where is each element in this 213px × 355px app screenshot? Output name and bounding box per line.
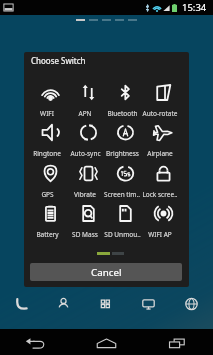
button[interactable]: Contacts bbox=[42, 288, 84, 320]
staticText: Brightness bbox=[106, 149, 139, 158]
button[interactable]: Browser bbox=[170, 288, 213, 320]
button[interactable]: Vibrate bbox=[69, 159, 107, 199]
button[interactable]: Phone bbox=[0, 288, 42, 320]
button[interactable]: Brightness bbox=[106, 118, 144, 158]
button[interactable]: Ringtone bbox=[31, 118, 69, 158]
staticText: Airplane bbox=[147, 149, 173, 158]
button[interactable]: SD Mass bbox=[69, 199, 107, 239]
button[interactable]: Cancel bbox=[30, 263, 182, 281]
button[interactable]: WIFI AP bbox=[144, 199, 182, 239]
button[interactable]: Recents bbox=[142, 329, 213, 355]
button[interactable]: WIFI bbox=[31, 78, 69, 118]
staticText: Bluetooth bbox=[107, 109, 138, 118]
staticText: Lock scree.. bbox=[142, 190, 178, 199]
button[interactable]: Auto-sync bbox=[69, 118, 107, 158]
button[interactable]: GPS bbox=[31, 159, 69, 199]
button[interactable]: Airplane bbox=[144, 118, 182, 158]
button[interactable]: Apps bbox=[84, 288, 127, 320]
staticText: Auto-rotate bbox=[142, 109, 178, 118]
staticText: Vibrate bbox=[74, 190, 96, 199]
staticText: 15:34 bbox=[182, 1, 207, 14]
staticText: WIFI bbox=[40, 109, 54, 118]
button[interactable]: APN bbox=[69, 78, 107, 118]
button[interactable]: Screen tim.. bbox=[106, 159, 144, 199]
button[interactable]: Messaging bbox=[127, 288, 170, 320]
button[interactable]: SD Unmou.. bbox=[106, 199, 144, 239]
button[interactable]: Lock scree.. bbox=[144, 159, 182, 199]
button[interactable]: Bluetooth bbox=[106, 78, 144, 118]
staticText: Choose Switch bbox=[31, 55, 86, 66]
staticText: Cancel bbox=[91, 266, 122, 279]
button[interactable]: Home bbox=[71, 329, 142, 355]
staticText: Auto-sync bbox=[70, 149, 101, 158]
staticText: Ringtone bbox=[33, 149, 61, 158]
staticText: SD Mass bbox=[72, 230, 98, 239]
staticText: Screen tim.. bbox=[104, 190, 140, 199]
staticText: WIFI AP bbox=[148, 230, 172, 239]
staticText: APN bbox=[78, 109, 92, 118]
staticText: GPS bbox=[41, 190, 54, 199]
staticText: SD Unmou.. bbox=[104, 230, 141, 239]
button[interactable]: Auto-rotate bbox=[144, 78, 182, 118]
button[interactable]: Back bbox=[0, 329, 71, 355]
staticText: Battery bbox=[36, 230, 59, 239]
button[interactable]: Battery bbox=[31, 199, 69, 239]
